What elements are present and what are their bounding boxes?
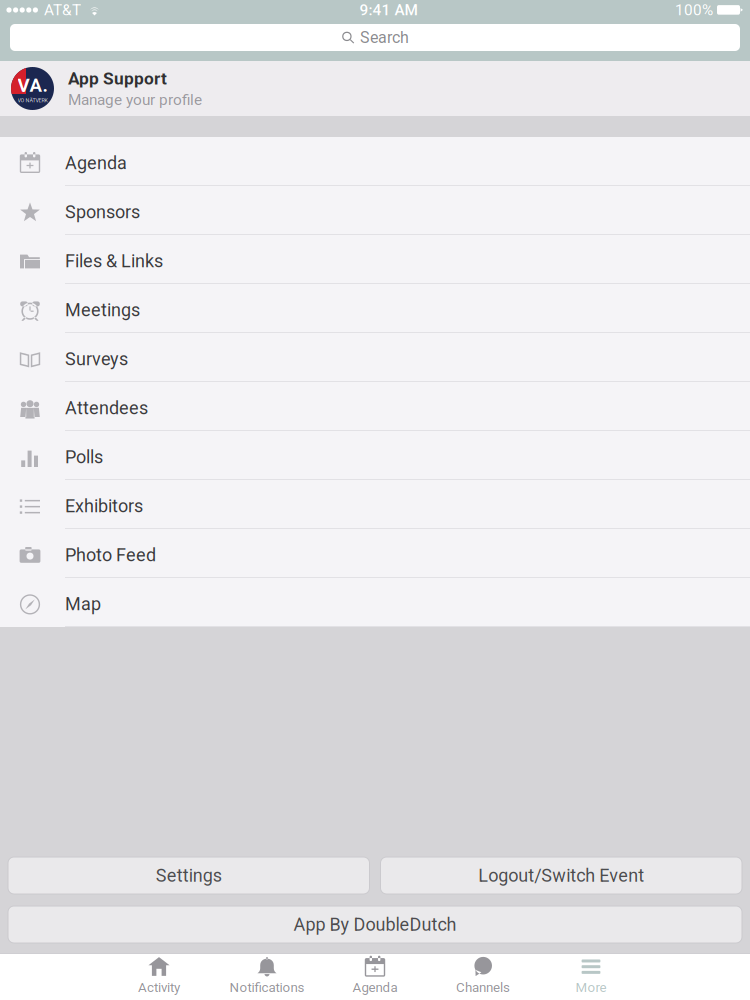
staticText: Settings	[156, 865, 222, 886]
button[interactable]: More	[537, 954, 645, 1000]
staticText: Agenda	[65, 152, 127, 174]
button[interactable]: Channels	[429, 954, 537, 1000]
button[interactable]: Sponsors	[0, 186, 750, 235]
staticText: 9:41 AM	[359, 1, 417, 19]
button[interactable]: Photo Feed	[0, 529, 750, 578]
staticText: App By DoubleDutch	[293, 914, 456, 935]
staticText: Logout/Switch Event	[478, 865, 644, 886]
staticText: App Support	[68, 68, 167, 89]
staticText: More	[575, 980, 606, 995]
staticText: Activity	[138, 980, 180, 995]
staticText: Attendees	[65, 397, 148, 419]
staticText: Surveys	[65, 348, 128, 370]
button[interactable]: Logout/Switch Event	[380, 857, 742, 894]
staticText: Channels	[456, 980, 510, 995]
button[interactable]: Surveys	[0, 333, 750, 382]
button[interactable]: Map	[0, 578, 750, 627]
button[interactable]: VA.	[0, 61, 750, 116]
staticText: Photo Feed	[65, 544, 156, 566]
staticText: Manage your profile	[68, 91, 202, 109]
button[interactable]: App By DoubleDutch	[8, 906, 742, 943]
staticText: 100%	[675, 1, 713, 19]
staticText: Polls	[65, 446, 103, 468]
staticText: Notifications	[229, 980, 304, 995]
staticText: Map	[65, 593, 101, 615]
staticText: Meetings	[65, 299, 140, 321]
staticText: VO NÄTVERK	[17, 97, 47, 103]
staticText: Sponsors	[65, 201, 140, 223]
button[interactable]: Notifications	[213, 954, 321, 1000]
button[interactable]: Agenda	[0, 137, 750, 186]
button[interactable]: Agenda	[321, 954, 429, 1000]
staticText: Search	[360, 28, 409, 47]
button[interactable]: Activity	[105, 954, 213, 1000]
button[interactable]: Files & Links	[0, 235, 750, 284]
button[interactable]: Exhibitors	[0, 480, 750, 529]
staticText: AT&T	[44, 1, 81, 19]
button[interactable]: Meetings	[0, 284, 750, 333]
staticText: Agenda	[352, 980, 397, 995]
staticText: Files & Links	[65, 250, 163, 272]
button[interactable]: Polls	[0, 431, 750, 480]
button[interactable]: Attendees	[0, 382, 750, 431]
staticText: VA.	[17, 74, 47, 96]
button[interactable]: Settings	[8, 857, 369, 894]
staticText: Exhibitors	[65, 495, 143, 517]
